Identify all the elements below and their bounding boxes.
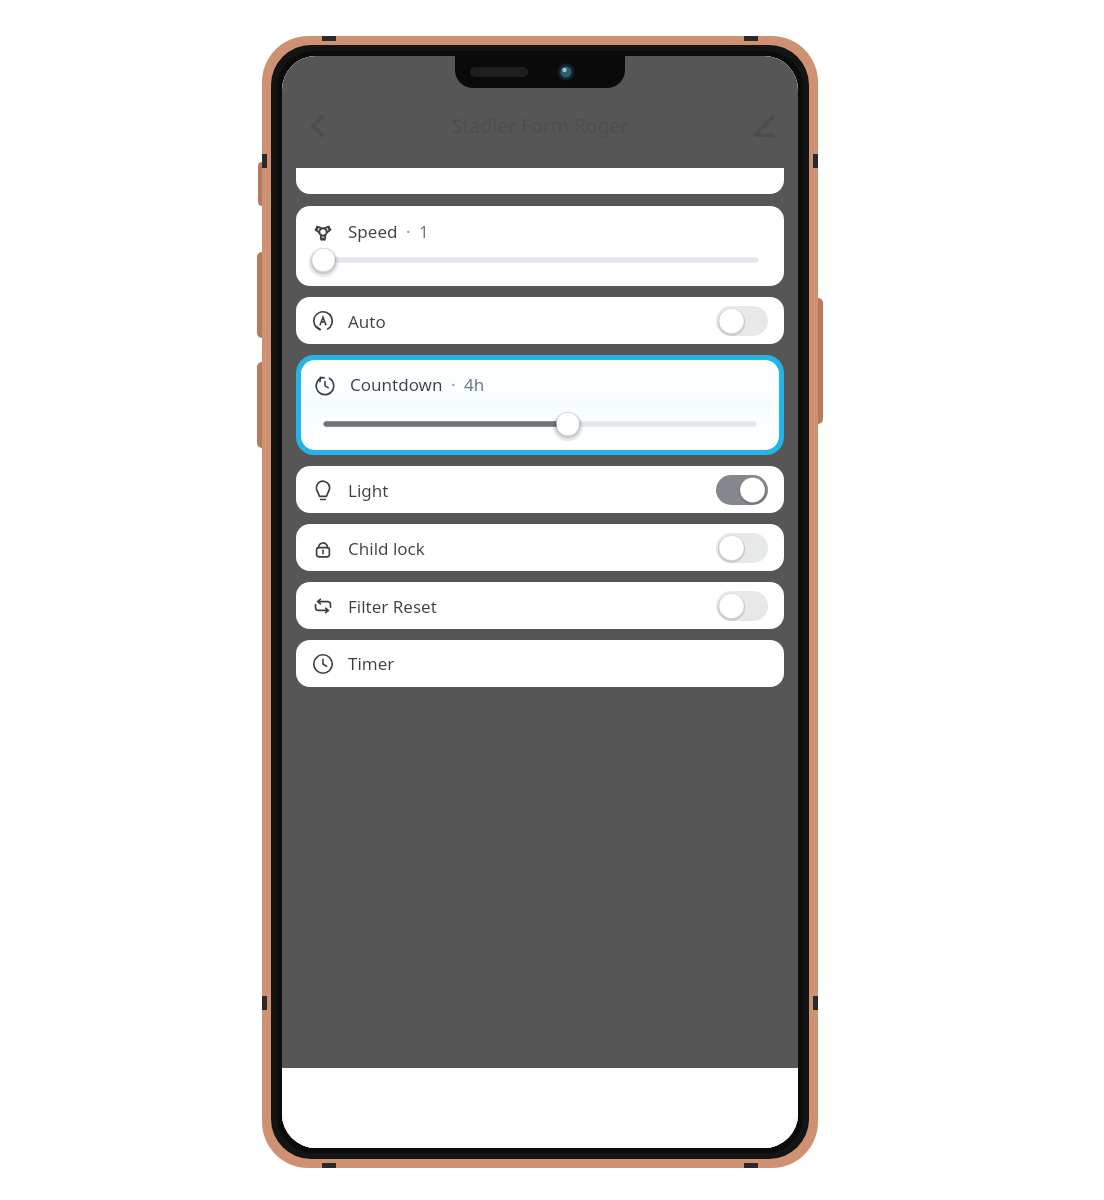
staticText: 4h	[464, 373, 485, 396]
staticText: Child lock	[348, 537, 425, 560]
button[interactable]: On	[716, 475, 768, 505]
button[interactable]: Auto	[296, 297, 784, 344]
button[interactable]	[296, 168, 784, 194]
staticText: ·	[451, 373, 456, 396]
button[interactable]: Filter Reset	[296, 582, 784, 629]
staticText: Speed	[348, 220, 398, 243]
staticText: Light	[348, 479, 389, 502]
button[interactable]: Off	[716, 591, 768, 621]
staticText: Auto	[348, 310, 386, 333]
button[interactable]: Child lock	[296, 524, 784, 571]
button[interactable]: Off	[716, 306, 768, 336]
button[interactable]	[314, 413, 766, 435]
button[interactable]: Timer	[296, 640, 784, 687]
button[interactable]: Speed	[296, 206, 784, 286]
staticText: ·	[406, 220, 411, 243]
staticText: Timer	[348, 652, 395, 675]
staticText: Countdown	[350, 373, 443, 396]
staticText: Filter Reset	[348, 595, 437, 618]
button[interactable]: Off	[716, 533, 768, 563]
button[interactable]: Light	[296, 466, 784, 513]
button[interactable]	[312, 249, 768, 271]
staticText: 1	[419, 220, 429, 243]
button[interactable]: Countdown	[301, 360, 779, 450]
